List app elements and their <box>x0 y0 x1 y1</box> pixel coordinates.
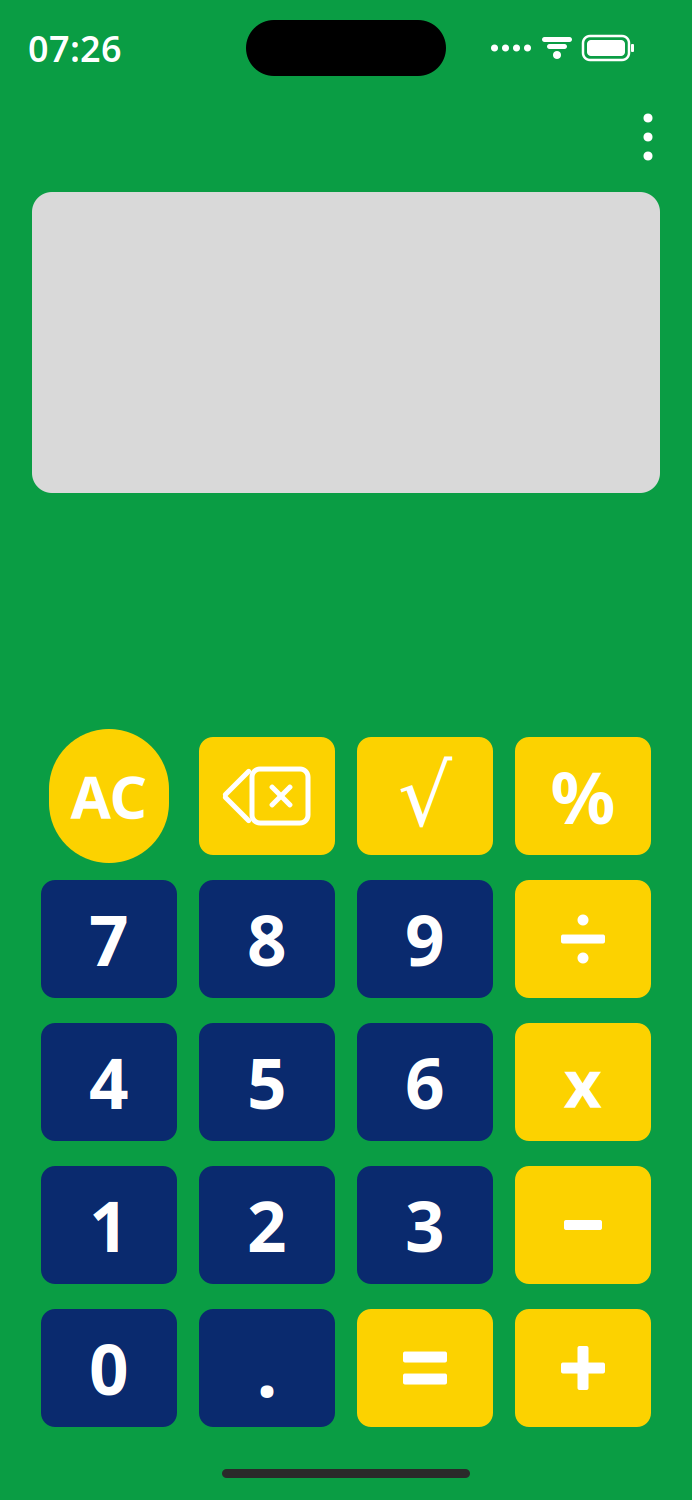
staticText: . <box>256 1318 277 1418</box>
button[interactable]: 2 <box>199 1166 335 1284</box>
button[interactable]: Square root <box>357 737 493 855</box>
staticText: 8 <box>247 893 287 985</box>
staticText: % <box>550 748 615 844</box>
button[interactable]: 1 <box>41 1166 177 1284</box>
staticText: 5 <box>247 1036 287 1128</box>
staticText: AC <box>70 757 147 835</box>
button[interactable]: AC <box>41 737 177 855</box>
staticText: x <box>563 1038 602 1126</box>
button[interactable]: 5 <box>199 1023 335 1141</box>
button[interactable]: 8 <box>199 880 335 998</box>
staticText: 6 <box>405 1036 445 1128</box>
button[interactable]: . <box>199 1309 335 1427</box>
staticText: √ <box>398 748 452 844</box>
staticText: 3 <box>405 1179 445 1271</box>
button[interactable]: 9 <box>357 880 493 998</box>
button[interactable]: More options <box>620 104 676 170</box>
button[interactable]: x <box>515 1023 651 1141</box>
staticText: 0 <box>89 1322 129 1414</box>
button[interactable]: % <box>515 737 651 855</box>
staticText: 4 <box>89 1036 129 1128</box>
button[interactable]: 7 <box>41 880 177 998</box>
button[interactable]: Equals <box>357 1309 493 1427</box>
button[interactable]: Plus <box>515 1309 651 1427</box>
button[interactable]: 4 <box>41 1023 177 1141</box>
staticText: 9 <box>405 893 445 985</box>
button[interactable]: 3 <box>357 1166 493 1284</box>
staticText: 2 <box>247 1179 287 1271</box>
staticText: 7 <box>89 893 129 985</box>
staticText: 1 <box>89 1179 129 1271</box>
button[interactable]: Minus <box>515 1166 651 1284</box>
button[interactable]: 0 <box>41 1309 177 1427</box>
button[interactable]: Backspace <box>199 737 335 855</box>
button[interactable]: Divide <box>515 880 651 998</box>
staticText: 07:26 <box>28 24 122 72</box>
button[interactable]: 6 <box>357 1023 493 1141</box>
